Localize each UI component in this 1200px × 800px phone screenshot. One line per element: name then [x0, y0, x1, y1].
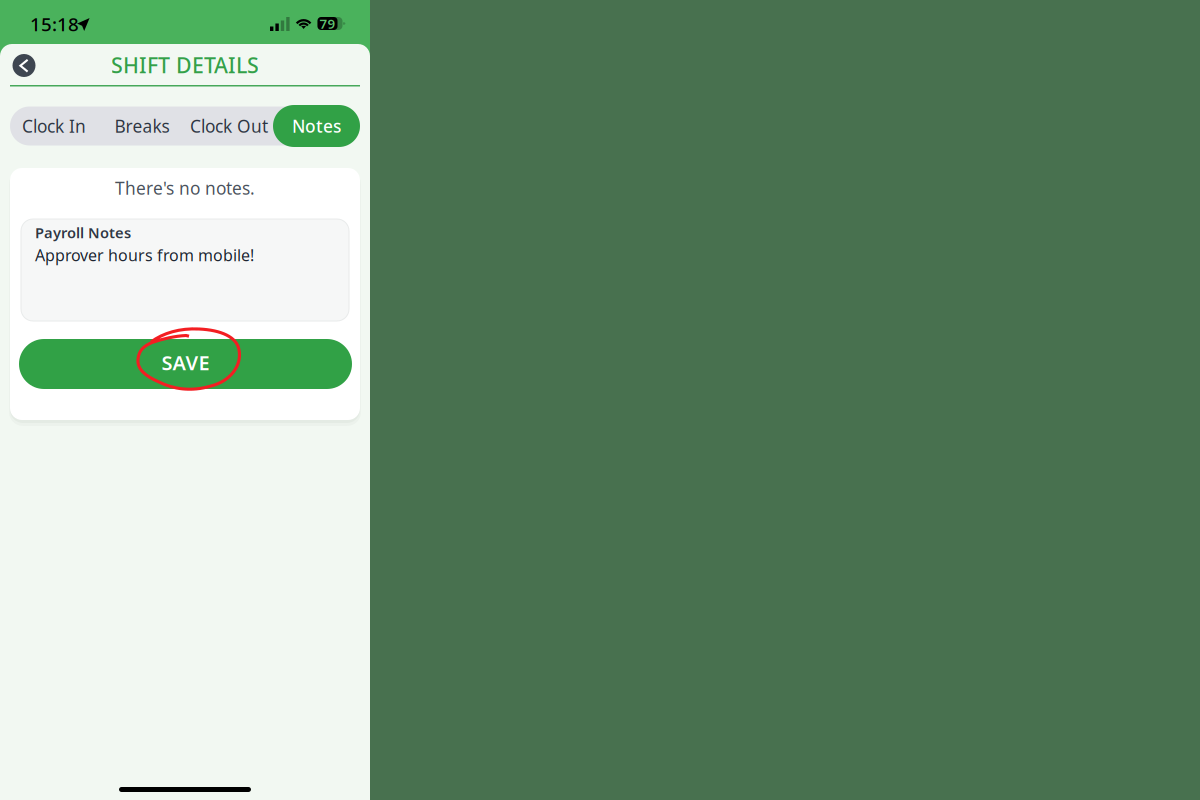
staticText: Breaks — [114, 114, 169, 137]
staticText: 15:18 — [30, 12, 79, 36]
button[interactable]: Clock In — [4, 105, 104, 147]
staticText: SAVE — [161, 349, 209, 376]
staticText: Payroll Notes — [35, 223, 131, 242]
staticText: Clock In — [22, 114, 86, 137]
button[interactable]: Clock Out — [179, 105, 279, 147]
staticText: Approver hours from mobile! — [35, 244, 254, 266]
staticText: Clock Out — [190, 114, 268, 137]
button[interactable]: Notes — [273, 105, 360, 147]
staticText: Notes — [292, 114, 341, 137]
button[interactable]: Back — [5, 46, 43, 84]
button[interactable]: SAVE — [19, 339, 352, 389]
staticText: There's no notes. — [115, 176, 255, 199]
staticText: 79 — [319, 15, 335, 32]
staticText: SHIFT DETAILS — [111, 51, 259, 79]
button[interactable]: Breaks — [92, 105, 192, 147]
